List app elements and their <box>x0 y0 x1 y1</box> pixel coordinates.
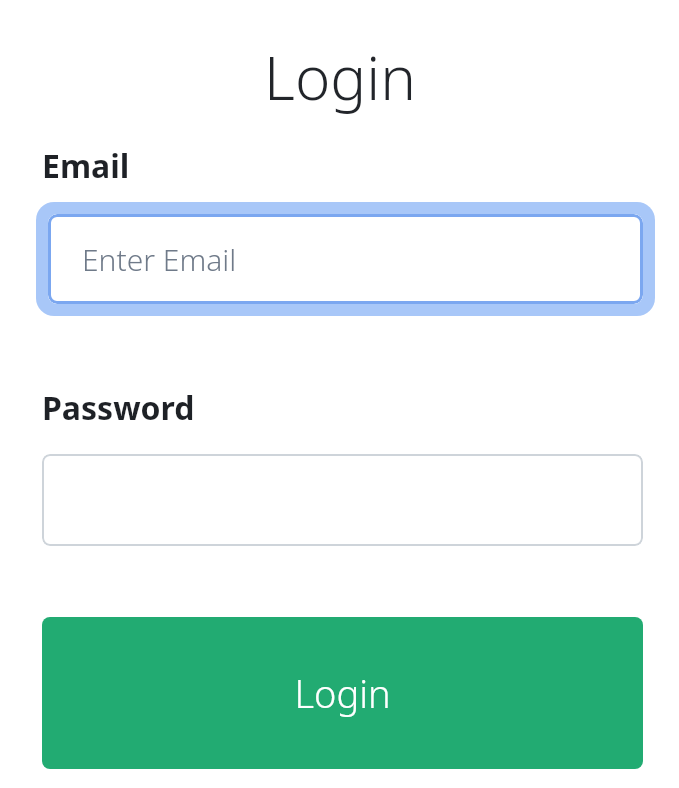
button[interactable]: Enter Email <box>36 202 655 316</box>
button[interactable]: Login <box>42 617 643 769</box>
staticText: Login <box>264 36 416 118</box>
staticText: Enter Email <box>82 239 237 280</box>
button[interactable]: Password input <box>42 454 643 546</box>
staticText: Password <box>42 386 195 430</box>
staticText: Login <box>294 667 391 719</box>
staticText: Email <box>42 144 130 188</box>
